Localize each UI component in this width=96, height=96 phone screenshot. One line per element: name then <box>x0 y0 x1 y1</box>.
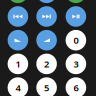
button[interactable]: 6 <box>66 77 86 96</box>
button[interactable] <box>66 6 86 27</box>
button[interactable] <box>36 30 57 50</box>
staticText: 4 <box>15 81 20 94</box>
button[interactable] <box>8 6 28 27</box>
button[interactable]: 3 <box>66 54 86 74</box>
staticText: 1 <box>15 57 20 70</box>
staticText: 5 <box>44 81 49 94</box>
button[interactable] <box>66 0 86 3</box>
button[interactable] <box>8 30 28 50</box>
button[interactable]: 2 <box>36 54 57 74</box>
staticText: 0 <box>73 34 78 46</box>
staticText: 3 <box>73 57 78 70</box>
button[interactable]: 4 <box>8 77 28 96</box>
button[interactable] <box>8 0 28 3</box>
button[interactable]: 1 <box>8 54 28 74</box>
button[interactable] <box>36 0 57 3</box>
button[interactable]: 0 <box>66 30 86 50</box>
staticText: 2 <box>44 57 49 70</box>
button[interactable]: 5 <box>36 77 57 96</box>
button[interactable] <box>36 6 57 27</box>
staticText: 6 <box>73 81 78 94</box>
